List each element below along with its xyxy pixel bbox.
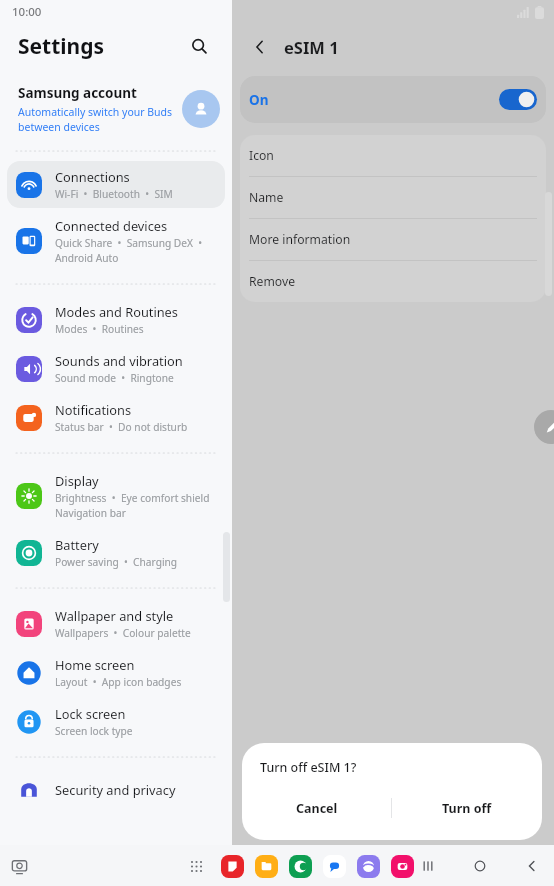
staticText: Battery bbox=[55, 536, 99, 553]
staticText: On bbox=[249, 91, 269, 109]
staticText: Turn off bbox=[442, 800, 492, 817]
button[interactable]: Cancel bbox=[242, 788, 391, 828]
button[interactable]: Notifications bbox=[7, 394, 225, 441]
button[interactable] bbox=[321, 853, 347, 879]
button[interactable]: On bbox=[240, 76, 546, 123]
staticText: Connected devices bbox=[55, 217, 168, 234]
button[interactable] bbox=[287, 853, 313, 879]
button[interactable]: Security and privacy bbox=[7, 769, 225, 809]
staticText: Icon bbox=[249, 147, 274, 164]
staticText: Modes and Routines bbox=[55, 303, 178, 320]
staticText: Quick Share • Samsung DeX • bbox=[55, 236, 203, 250]
staticText: Automatically switch your Buds bbox=[18, 105, 173, 119]
button[interactable]: Display bbox=[7, 465, 225, 527]
button[interactable]: Connected devices bbox=[7, 210, 225, 272]
button[interactable]: Recent apps bbox=[6, 853, 32, 879]
staticText: Brightness • Eye comfort shield • bbox=[55, 491, 217, 505]
staticText: Layout • App icon badges bbox=[55, 675, 182, 689]
button[interactable]: Sounds and vibration bbox=[7, 345, 225, 392]
staticText: Cancel bbox=[296, 800, 338, 817]
button[interactable]: Search bbox=[184, 31, 214, 61]
button[interactable]: Wallpaper and style bbox=[7, 600, 225, 647]
staticText: 10:00 bbox=[12, 4, 42, 20]
staticText: Power saving • Charging bbox=[55, 555, 178, 569]
button[interactable]: Apps bbox=[184, 854, 208, 878]
staticText: Navigation bar bbox=[55, 506, 126, 520]
staticText: Wi-Fi • Bluetooth • SIM manager bbox=[55, 187, 217, 201]
button[interactable]: Modes and Routines bbox=[7, 296, 225, 343]
staticText: Turn off eSIM 1? bbox=[260, 759, 357, 776]
button[interactable]: Connections bbox=[7, 161, 225, 208]
button[interactable]: Samsung account bbox=[0, 82, 232, 136]
button[interactable] bbox=[355, 853, 381, 879]
staticText: Screen lock type bbox=[55, 724, 133, 738]
button[interactable] bbox=[253, 853, 279, 879]
staticText: Security and privacy bbox=[55, 781, 176, 798]
staticText: More information bbox=[249, 231, 351, 248]
staticText: Modes • Routines bbox=[55, 322, 144, 336]
button[interactable]: Battery bbox=[7, 529, 225, 576]
staticText: Settings bbox=[18, 32, 105, 61]
button[interactable] bbox=[219, 853, 245, 879]
staticText: Wallpaper and style bbox=[55, 607, 174, 624]
button[interactable]: Back bbox=[246, 33, 274, 61]
button[interactable]: Home screen bbox=[7, 649, 225, 696]
button[interactable]: Turn off bbox=[392, 788, 542, 828]
staticText: between devices bbox=[18, 120, 100, 134]
button[interactable]: Icon bbox=[240, 135, 546, 177]
button[interactable] bbox=[389, 853, 415, 879]
staticText: Wallpapers • Colour palette bbox=[55, 626, 191, 640]
staticText: Sound mode • Ringtone bbox=[55, 371, 174, 385]
button[interactable]: Lock screen bbox=[7, 698, 225, 745]
button[interactable]: Back bbox=[518, 852, 546, 880]
button[interactable]: Name bbox=[240, 177, 546, 219]
staticText: Display bbox=[55, 472, 99, 489]
button[interactable]: Edit bbox=[534, 410, 554, 444]
staticText: Notifications bbox=[55, 401, 132, 418]
staticText: Samsung account bbox=[18, 84, 137, 102]
button[interactable]: Recents bbox=[414, 852, 442, 880]
staticText: Name bbox=[249, 189, 284, 206]
staticText: Status bar • Do not disturb bbox=[55, 420, 188, 434]
staticText: eSIM 1 bbox=[284, 36, 339, 58]
staticText: Connections bbox=[55, 168, 130, 185]
staticText: Home screen bbox=[55, 656, 135, 673]
staticText: Android Auto bbox=[55, 251, 119, 265]
staticText: Sounds and vibration bbox=[55, 352, 183, 369]
button[interactable]: Remove bbox=[240, 261, 546, 302]
staticText: Remove bbox=[249, 273, 296, 290]
staticText: Lock screen bbox=[55, 705, 126, 722]
button[interactable]: Home bbox=[466, 852, 494, 880]
button[interactable]: More information bbox=[240, 219, 546, 261]
